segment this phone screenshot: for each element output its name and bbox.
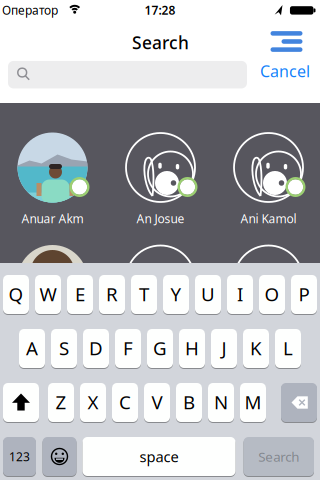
staticText: Y: [170, 282, 181, 306]
button[interactable]: V: [0, 0, 320, 480]
button[interactable]: Search: [0, 0, 320, 480]
button[interactable]: E: [0, 0, 320, 480]
button[interactable]: Menu: [270, 24, 314, 58]
button[interactable]: Emoji: [0, 0, 320, 480]
button[interactable]: N: [0, 0, 320, 480]
button[interactable]: Anuar Akm: [2, 117, 102, 229]
button[interactable]: W: [0, 0, 320, 480]
button[interactable]: B: [0, 0, 320, 480]
staticText: D: [89, 336, 103, 360]
staticText: E: [75, 282, 85, 306]
staticText: Cancel: [260, 60, 310, 82]
button[interactable]: L: [0, 0, 320, 480]
staticText: O: [264, 282, 279, 306]
button[interactable]: S: [0, 0, 320, 480]
staticText: An Josue: [136, 210, 184, 226]
button[interactable]: G: [0, 0, 320, 480]
staticText: T: [139, 282, 149, 306]
button[interactable]: D: [0, 0, 320, 480]
staticText: B: [183, 390, 195, 414]
button[interactable]: T: [0, 0, 320, 480]
staticText: V: [151, 390, 162, 414]
button[interactable]: P: [0, 0, 320, 480]
staticText: J: [221, 336, 226, 360]
staticText: 123: [9, 448, 30, 464]
button[interactable]: M: [0, 0, 320, 480]
staticText: Ani Kamol: [240, 210, 296, 226]
staticText: A: [26, 336, 38, 360]
button[interactable]: Y: [0, 0, 320, 480]
button[interactable]: Q: [0, 0, 320, 480]
button[interactable]: R: [0, 0, 320, 480]
staticText: C: [119, 390, 131, 414]
staticText: space: [139, 447, 178, 466]
staticText: Search: [258, 448, 299, 465]
staticText: I: [237, 282, 243, 306]
button[interactable]: An Josue: [110, 117, 210, 229]
button[interactable]: C: [0, 0, 320, 480]
button[interactable]: space: [0, 0, 320, 480]
button[interactable]: H: [0, 0, 320, 480]
button[interactable]: Cancel: [248, 57, 320, 85]
staticText: P: [298, 282, 309, 306]
staticText: Q: [8, 282, 23, 306]
staticText: X: [87, 390, 98, 414]
button[interactable]: K: [0, 0, 320, 480]
staticText: K: [250, 336, 262, 360]
staticText: 17:28: [144, 2, 175, 18]
staticText: U: [201, 282, 215, 306]
button[interactable]: J: [0, 0, 320, 480]
button[interactable]: X: [0, 0, 320, 480]
button[interactable]: A: [0, 0, 320, 480]
staticText: Z: [55, 390, 66, 414]
staticText: Anuar Akm: [21, 210, 83, 226]
staticText: N: [214, 390, 228, 414]
staticText: S: [59, 336, 69, 360]
staticText: G: [153, 336, 167, 360]
button[interactable]: Delete: [0, 0, 320, 480]
button[interactable]: U: [0, 0, 320, 480]
staticText: L: [283, 336, 293, 360]
button[interactable]: Shift: [0, 0, 320, 480]
staticText: W: [39, 282, 56, 306]
staticText: F: [123, 336, 133, 360]
staticText: R: [106, 282, 118, 306]
button[interactable]: I: [0, 0, 320, 480]
button[interactable]: 123: [0, 0, 320, 480]
button[interactable]: Ani Kamol: [218, 117, 318, 229]
staticText: Оператор: [2, 2, 58, 18]
button[interactable]: Search: [8, 61, 247, 88]
staticText: M: [244, 390, 261, 414]
button[interactable]: Z: [0, 0, 320, 480]
staticText: H: [185, 336, 199, 360]
button[interactable]: O: [0, 0, 320, 480]
staticText: Search: [132, 31, 189, 54]
button[interactable]: F: [0, 0, 320, 480]
